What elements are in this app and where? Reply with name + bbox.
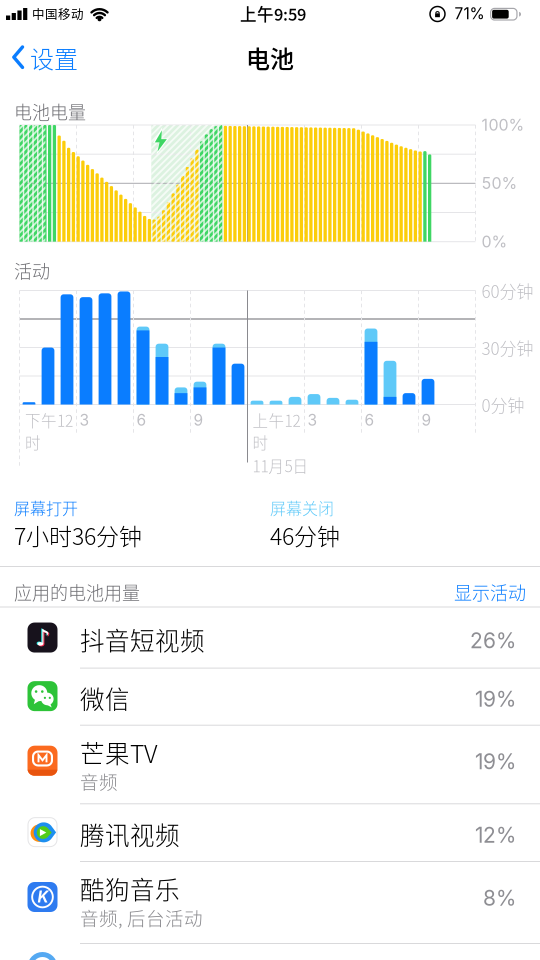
button[interactable]: 显示活动 [406, 577, 526, 607]
staticText: 抖音短视频 [80, 622, 205, 657]
staticText: 71% [454, 4, 484, 23]
staticText: 7小时36分钟 [14, 518, 142, 552]
staticText: 46分钟 [270, 518, 340, 552]
staticText: 设置 [30, 40, 78, 75]
staticText: 下午12 [25, 409, 73, 431]
staticText: 酷狗音乐 [80, 871, 180, 906]
staticText: 60分钟 [481, 278, 533, 303]
staticText: 12% [475, 822, 516, 848]
staticText: 微信 [80, 680, 130, 716]
button[interactable]: 设置 [12, 40, 78, 75]
staticText: 应用的电池用量 [14, 579, 140, 605]
staticText: 9 [193, 411, 203, 429]
staticText: 时 [252, 431, 268, 453]
staticText: 8% [483, 885, 516, 911]
staticText: 26% [470, 628, 516, 653]
staticText: 上午9:59 [240, 2, 306, 25]
button[interactable]: ♪ [0, 607, 540, 668]
staticText: 0分钟 [481, 392, 524, 417]
button[interactable]: 腾讯视频 [0, 803, 540, 861]
staticText: 音频 [80, 768, 118, 795]
staticText: ♪ [36, 625, 50, 652]
staticText: 6 [136, 411, 146, 429]
staticText: 中国移动 [32, 4, 84, 23]
staticText: 30分钟 [481, 335, 533, 360]
staticText: 腾讯视频 [80, 816, 180, 852]
staticText: 电池 [246, 40, 294, 75]
staticText: ♪ [34, 624, 48, 650]
button[interactable]: 芒果TV [0, 725, 540, 803]
staticText: 3 [79, 411, 89, 429]
staticText: 6 [364, 411, 374, 429]
staticText: 屏幕打开 [14, 496, 78, 519]
staticText: 100% [481, 115, 524, 135]
staticText: 19% [475, 686, 516, 712]
staticText: 屏幕关闭 [270, 496, 334, 519]
staticText: 电池电量 [14, 98, 86, 125]
staticText: 50% [481, 174, 517, 193]
staticText: 0% [481, 232, 507, 251]
staticText: 活动 [14, 257, 50, 284]
staticText: 3 [307, 411, 317, 429]
staticText: 上午12 [252, 409, 300, 431]
staticText: 11月5日 [252, 454, 308, 477]
staticText: 芒果TV [80, 734, 157, 770]
staticText: ♪ [35, 625, 49, 651]
staticText: 9 [421, 411, 431, 429]
staticText: K [37, 888, 48, 906]
staticText: 显示活动 [454, 579, 526, 605]
staticText: 音频, 后台活动 [80, 904, 203, 931]
button[interactable]: 微信 [0, 668, 540, 725]
staticText: 时 [25, 431, 41, 453]
button[interactable]: K [0, 861, 540, 943]
staticText: 19% [475, 749, 516, 774]
